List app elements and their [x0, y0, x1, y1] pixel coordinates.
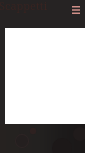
button[interactable]: Menu	[68, 2, 83, 17]
staticText: Scappetti	[0, 0, 48, 13]
